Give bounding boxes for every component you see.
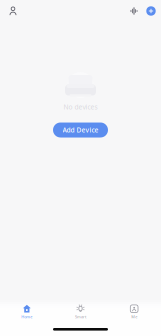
staticText: No devices [63,103,97,111]
staticText: Home [21,314,32,319]
button[interactable]: Home [0,299,54,325]
staticText: Add Device [62,126,98,134]
button[interactable]: Me [107,299,161,325]
button[interactable]: Smart [54,299,107,325]
staticText: Me [131,314,137,319]
button[interactable]: Add Device [53,122,108,137]
button[interactable]: Account [2,1,24,21]
staticText: Smart [75,314,86,319]
button[interactable]: Add device [141,1,161,21]
button[interactable]: Voice [124,1,144,21]
